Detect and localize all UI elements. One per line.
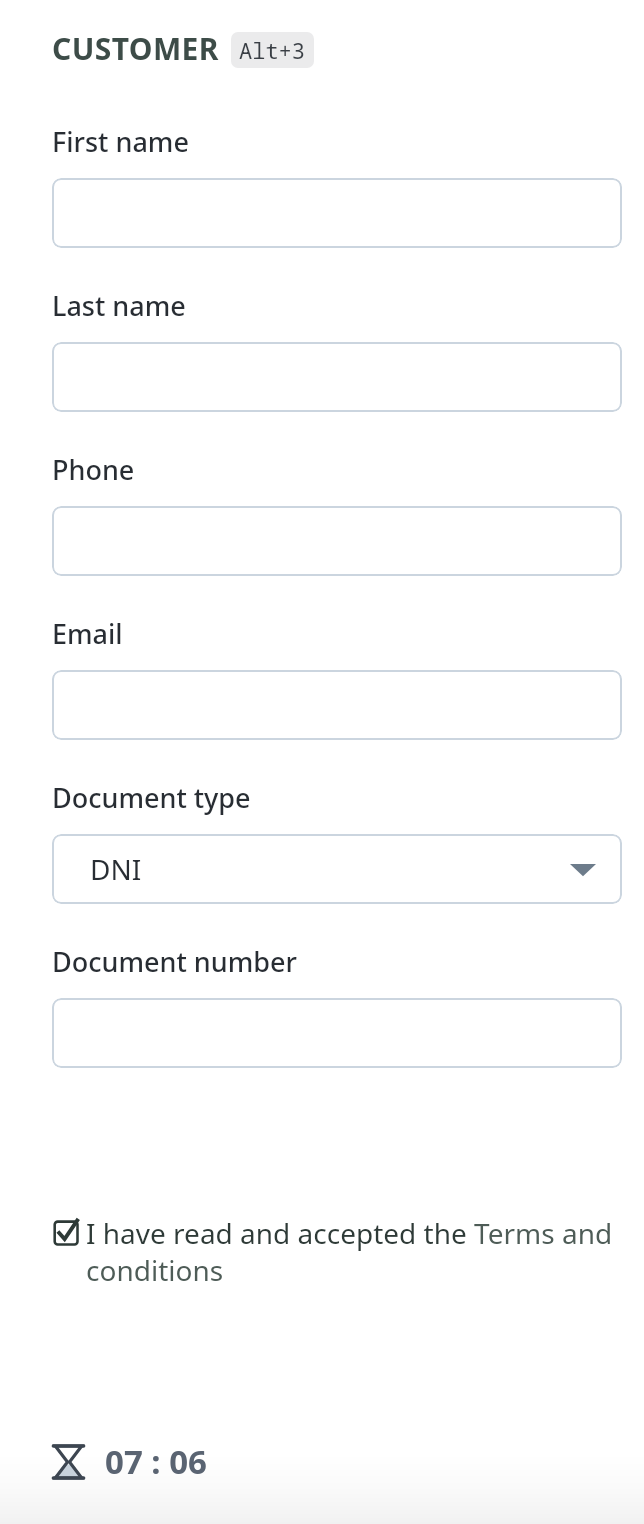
staticText: Last name xyxy=(52,287,186,324)
staticText: 07 : 06 xyxy=(105,1439,207,1484)
staticText: Phone xyxy=(52,451,135,488)
staticText: First name xyxy=(52,123,189,160)
other: Accept terms checkbox xyxy=(52,1218,82,1248)
staticText: I have read and accepted the Terms and c… xyxy=(86,1214,622,1289)
button[interactable] xyxy=(52,178,622,248)
button[interactable]: DNI xyxy=(52,834,622,904)
staticText: CUSTOMER xyxy=(52,28,219,69)
button[interactable] xyxy=(52,998,622,1068)
staticText: DNI xyxy=(90,850,142,888)
button[interactable]: Accept terms checkbox xyxy=(52,1214,622,1289)
staticText: Alt+3 xyxy=(239,35,306,65)
staticText: Document type xyxy=(52,779,251,816)
button[interactable] xyxy=(52,670,622,740)
button[interactable] xyxy=(52,506,622,576)
staticText: Document number xyxy=(52,943,297,980)
staticText: Email xyxy=(52,615,123,652)
button[interactable] xyxy=(52,342,622,412)
